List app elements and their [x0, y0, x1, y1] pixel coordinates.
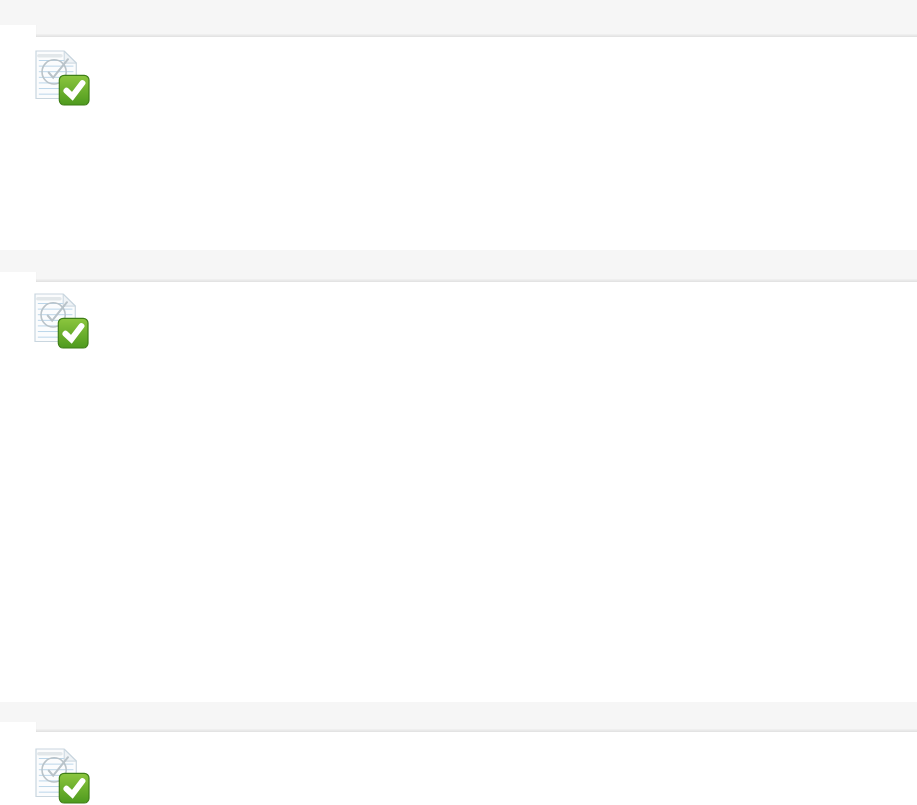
button[interactable]: Completed document — [35, 294, 88, 348]
button[interactable] — [0, 702, 917, 732]
button[interactable] — [0, 250, 917, 282]
button[interactable]: Completed document — [36, 51, 89, 105]
button[interactable] — [0, 0, 917, 37]
button[interactable]: Completed document — [36, 749, 89, 803]
